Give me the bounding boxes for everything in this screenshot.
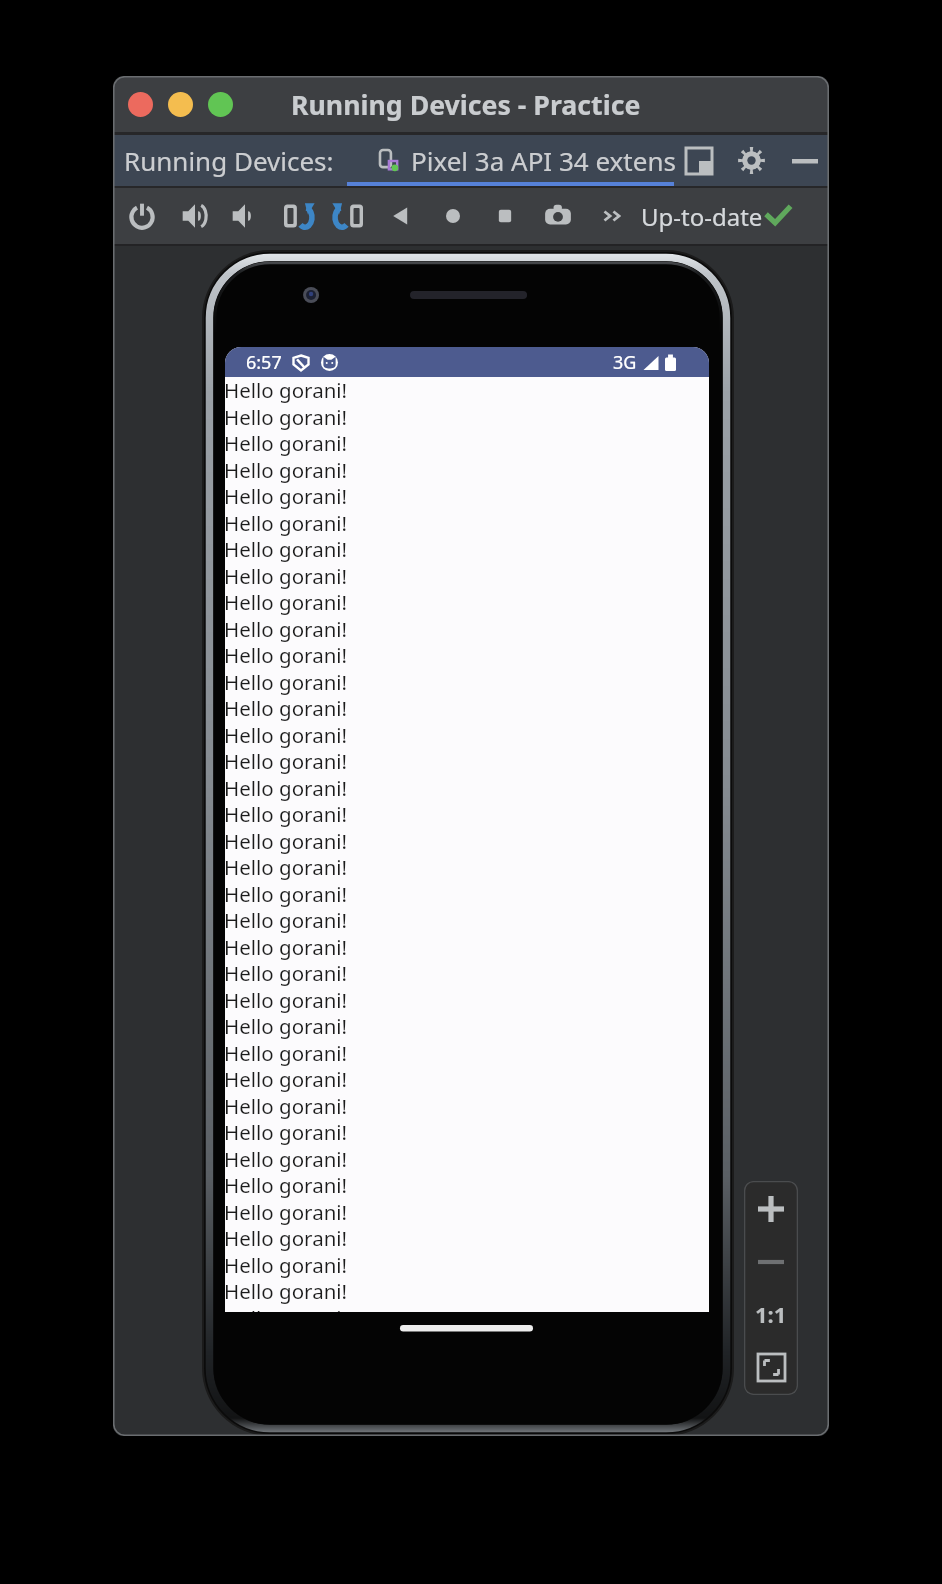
button[interactable]: Rotate right [329, 188, 369, 244]
staticText: Hello gorani! [225, 880, 348, 908]
staticText: Hello gorani! [225, 1277, 348, 1305]
button[interactable]: Volume down [225, 188, 265, 244]
staticText: Hello gorani! [225, 1092, 348, 1120]
button[interactable]: Screenshot [538, 188, 578, 244]
staticText: Pixel 3a API 34 extens [411, 143, 676, 178]
staticText: Hello gorani! [225, 1065, 348, 1093]
staticText: Hello gorani! [225, 721, 348, 749]
staticText: 3G [613, 350, 637, 375]
staticText: Hello gorani! [225, 1145, 348, 1173]
button[interactable]: Zoom in [745, 1184, 797, 1234]
button[interactable]: Back [381, 188, 421, 244]
staticText: Hello gorani! [225, 588, 348, 616]
staticText: Hello gorani! [225, 456, 348, 484]
staticText: Hello gorani! [225, 1224, 348, 1252]
button[interactable]: Actual size [745, 1289, 797, 1339]
button[interactable]: More actions [594, 188, 634, 244]
staticText: Hello gorani! [225, 535, 348, 563]
button[interactable]: Minimize window [168, 92, 193, 117]
staticText: Hello gorani! [225, 1251, 348, 1279]
button[interactable]: Split window [675, 135, 723, 186]
staticText: Hello gorani! [225, 986, 348, 1014]
staticText: Hello gorani! [225, 1039, 348, 1067]
staticText: Up-to-date [641, 200, 763, 233]
staticText: 6:57 [246, 350, 282, 375]
staticText: Hello gorani! [225, 376, 348, 404]
staticText: Hello gorani! [225, 509, 348, 537]
staticText: 1:1 [755, 1299, 787, 1329]
staticText: Hello gorani! [225, 562, 348, 590]
staticText: Running Devices: [124, 143, 334, 178]
staticText: Hello gorani! [225, 1198, 348, 1226]
button[interactable]: Power [122, 188, 162, 244]
staticText: Running Devices - Practice [291, 86, 641, 122]
staticText: Hello gorani! [225, 1304, 348, 1312]
button[interactable]: Pixel 3a API 34 extens [347, 135, 674, 186]
staticText: Hello gorani! [225, 1012, 348, 1040]
button[interactable]: Settings [727, 135, 775, 186]
staticText: Hello gorani! [225, 959, 348, 987]
button[interactable]: Maximize window [208, 92, 233, 117]
staticText: Hello gorani! [225, 774, 348, 802]
button[interactable]: Zoom out [745, 1237, 797, 1287]
staticText: Hello gorani! [225, 668, 348, 696]
button[interactable]: Home [433, 188, 473, 244]
button[interactable]: Close window [128, 92, 153, 117]
staticText: Hello gorani! [225, 853, 348, 881]
staticText: Hello gorani! [225, 482, 348, 510]
staticText: Hello gorani! [225, 933, 348, 961]
staticText: Hello gorani! [225, 615, 348, 643]
staticText: Hello gorani! [225, 429, 348, 457]
staticText: Hello gorani! [225, 403, 348, 431]
staticText: Hello gorani! [225, 747, 348, 775]
staticText: Hello gorani! [225, 1171, 348, 1199]
button[interactable]: Rotate left [278, 188, 318, 244]
staticText: Hello gorani! [225, 827, 348, 855]
button[interactable]: Volume up [175, 188, 215, 244]
button[interactable]: Overview [485, 188, 525, 244]
staticText: Hello gorani! [225, 641, 348, 669]
staticText: Hello gorani! [225, 906, 348, 934]
button[interactable]: Hide panel [781, 135, 829, 186]
staticText: Hello gorani! [225, 1118, 348, 1146]
staticText: Hello gorani! [225, 694, 348, 722]
staticText: Hello gorani! [225, 800, 348, 828]
button[interactable]: Fit to screen [745, 1342, 797, 1392]
